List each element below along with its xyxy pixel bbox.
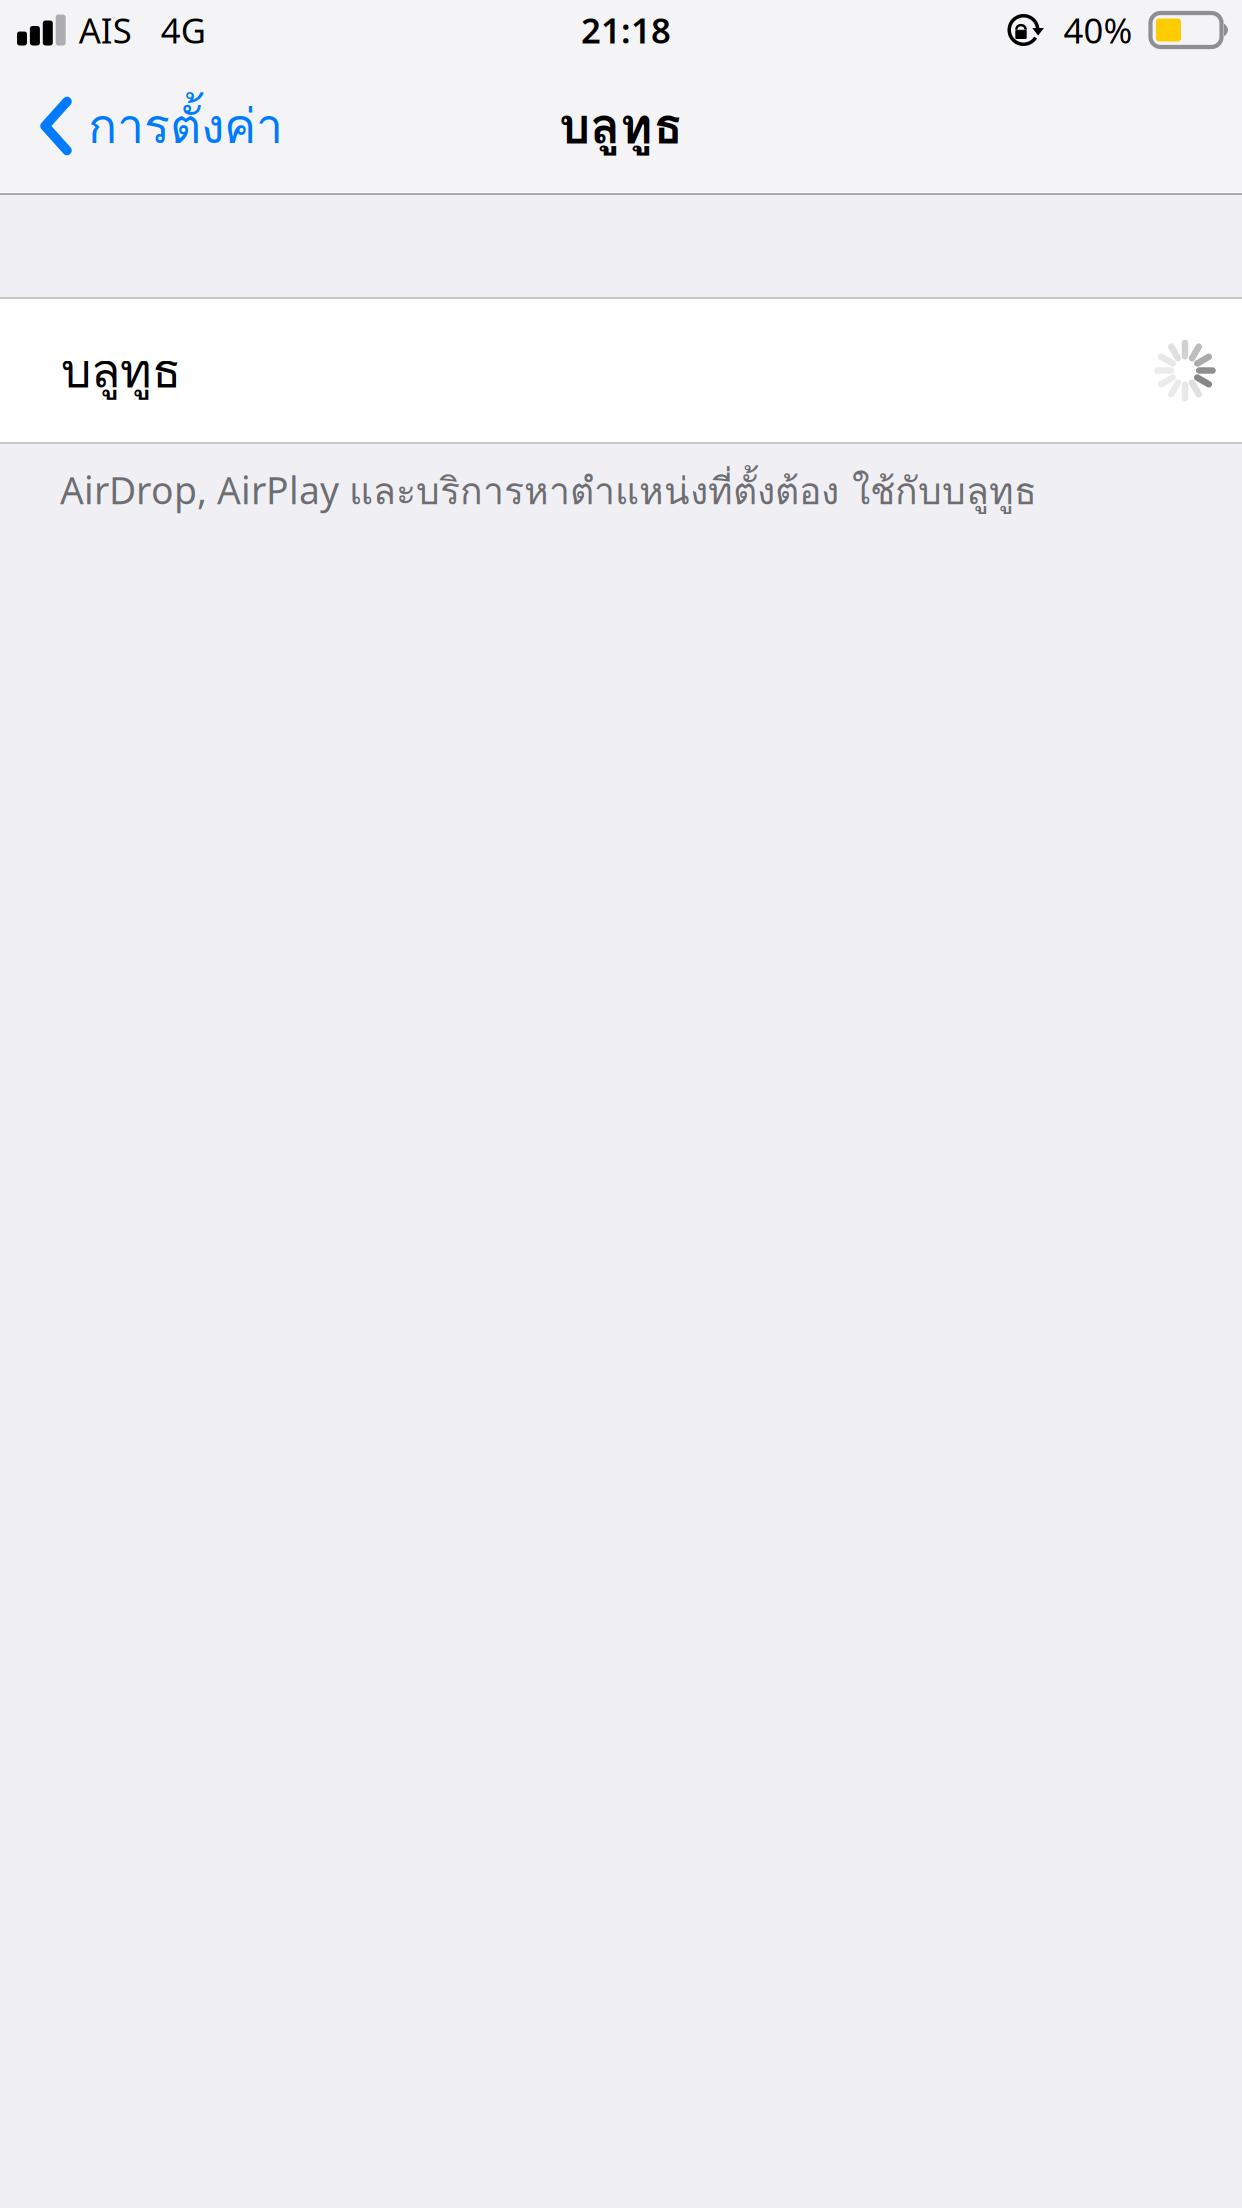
staticText: 40% (1063, 7, 1132, 53)
staticText: AIS (79, 7, 132, 53)
button[interactable]: บลูทูธ (0, 299, 1242, 442)
button[interactable]: การตั้งค่า (0, 60, 307, 192)
staticText: AirDrop, AirPlay และบริการหาตำแหน่งที่ตั… (60, 462, 1037, 520)
staticText: บลูทูธ (61, 333, 181, 408)
staticText: 4G (161, 7, 206, 53)
staticText: การตั้งค่า (88, 89, 283, 163)
staticText: บลูทูธ (559, 88, 683, 164)
staticText: 21:18 (581, 7, 671, 53)
